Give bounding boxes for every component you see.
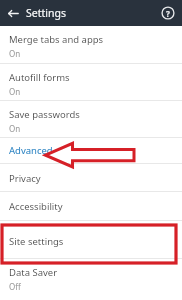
staticText: Merge tabs and apps (9, 33, 104, 46)
staticText: On (9, 48, 21, 59)
staticText: On (9, 86, 21, 97)
button[interactable]: Autofill forms (0, 64, 182, 101)
staticText: ? (166, 8, 170, 19)
button[interactable]: Help (160, 5, 176, 21)
button[interactable]: Data Saver (0, 259, 182, 299)
button[interactable]: Advanced (0, 138, 182, 164)
button[interactable]: Site settings (0, 221, 182, 259)
button[interactable]: Merge tabs and apps (0, 26, 182, 64)
staticText: Data Saver (9, 266, 58, 279)
staticText: Advanced (9, 144, 53, 157)
staticText: Accessibility (9, 200, 63, 213)
staticText: Site settings (9, 235, 64, 248)
staticText: Settings (26, 6, 66, 20)
staticText: On (9, 123, 21, 134)
button[interactable]: Back (5, 5, 22, 22)
button[interactable]: Privacy (0, 164, 182, 192)
staticText: Autofill forms (9, 71, 70, 84)
staticText: Privacy (9, 172, 41, 185)
staticText: Off (9, 281, 21, 292)
button[interactable]: Accessibility (0, 192, 182, 221)
button[interactable]: Save passwords (0, 101, 182, 138)
staticText: Save passwords (9, 108, 80, 121)
